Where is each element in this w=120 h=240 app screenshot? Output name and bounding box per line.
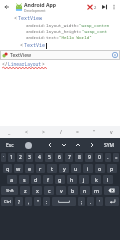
button[interactable]: Back bbox=[2, 2, 12, 12]
staticText: s bbox=[23, 176, 26, 183]
staticText: TextView bbox=[10, 52, 32, 59]
button[interactable]: a bbox=[7, 175, 17, 184]
button[interactable]: 2 bbox=[17, 153, 24, 162]
button[interactable]: Backspace bbox=[104, 186, 119, 195]
staticText: < bbox=[14, 15, 18, 22]
staticText: "wrap_cont bbox=[82, 29, 108, 35]
button[interactable]: o bbox=[95, 164, 105, 173]
button[interactable]: 5 bbox=[45, 153, 53, 162]
button[interactable]: n bbox=[80, 186, 90, 195]
button[interactable]: > bbox=[35, 126, 52, 138]
button[interactable]: 4 bbox=[35, 153, 43, 162]
button[interactable]: - bbox=[105, 153, 111, 162]
button[interactable]: More options bbox=[110, 3, 118, 11]
button[interactable]: = bbox=[113, 153, 119, 162]
button[interactable]: ; bbox=[78, 197, 85, 206]
button[interactable]: Android App bbox=[24, 1, 87, 13]
staticText: , bbox=[28, 199, 30, 205]
button[interactable]: 0 bbox=[95, 153, 103, 162]
button[interactable]: Shft bbox=[1, 186, 18, 195]
button[interactable]: Run bbox=[100, 3, 108, 11]
staticText: l bbox=[107, 176, 109, 183]
staticText: _ bbox=[8, 129, 11, 136]
button[interactable]: r bbox=[36, 164, 45, 173]
button[interactable]: Up bbox=[71, 138, 85, 152]
button[interactable]: m bbox=[92, 186, 102, 195]
staticText: t bbox=[51, 165, 53, 172]
button[interactable]: . bbox=[87, 197, 94, 206]
button[interactable]: w bbox=[14, 164, 23, 173]
staticText: y bbox=[63, 165, 66, 172]
button[interactable]: TextView bbox=[0, 50, 120, 60]
button[interactable]: ' bbox=[96, 197, 103, 206]
button[interactable]: 3 bbox=[26, 153, 33, 162]
button[interactable]: l bbox=[103, 175, 113, 184]
button[interactable]: x bbox=[32, 186, 42, 195]
button[interactable]: 9 bbox=[85, 153, 93, 162]
button[interactable]: i bbox=[83, 164, 93, 173]
staticText: Ctrl bbox=[4, 199, 11, 205]
button[interactable]: Trackpad bbox=[20, 138, 36, 152]
staticText: 5 bbox=[48, 154, 51, 161]
button[interactable]: p bbox=[107, 164, 117, 173]
button[interactable]: , bbox=[25, 197, 32, 206]
button[interactable]: b bbox=[68, 186, 78, 195]
button[interactable]: c bbox=[44, 186, 54, 195]
staticText: > bbox=[42, 61, 45, 67]
button[interactable]: u bbox=[71, 164, 81, 173]
staticText: : bbox=[46, 199, 48, 205]
button[interactable]: s bbox=[19, 175, 29, 184]
staticText: h bbox=[70, 176, 74, 183]
staticText: 3 bbox=[28, 154, 31, 161]
button[interactable]: 1 bbox=[8, 153, 15, 162]
button[interactable]: e bbox=[25, 164, 34, 173]
button[interactable]: t bbox=[47, 164, 57, 173]
button[interactable]: Space bbox=[52, 197, 76, 206]
button[interactable]: Errors bbox=[87, 4, 97, 10]
staticText: 6 bbox=[58, 154, 61, 161]
button[interactable]: z bbox=[20, 186, 30, 195]
button[interactable]: 7 bbox=[65, 153, 73, 162]
staticText: e bbox=[28, 165, 32, 172]
button[interactable]: g bbox=[55, 175, 65, 184]
button[interactable]: y bbox=[59, 164, 69, 173]
staticText: " bbox=[37, 199, 39, 205]
staticText: i bbox=[87, 165, 89, 172]
staticText: 0 bbox=[98, 154, 101, 161]
button[interactable]: < bbox=[18, 126, 35, 138]
staticText: / bbox=[60, 129, 62, 136]
button[interactable]: d bbox=[31, 175, 41, 184]
button[interactable]: ` bbox=[1, 153, 6, 162]
staticText: "Hello World" bbox=[59, 35, 92, 41]
button[interactable]: Enter bbox=[105, 197, 119, 206]
button[interactable]: SYM bbox=[99, 138, 120, 152]
button[interactable]: Ctrl bbox=[1, 197, 13, 206]
button[interactable]: = bbox=[69, 126, 86, 138]
button[interactable]: j bbox=[79, 175, 89, 184]
button[interactable]: 8 bbox=[75, 153, 83, 162]
staticText: m bbox=[94, 187, 100, 194]
button[interactable]: _ bbox=[0, 126, 18, 138]
button[interactable]: 6 bbox=[55, 153, 63, 162]
button[interactable]: h bbox=[67, 175, 77, 184]
button[interactable]: k bbox=[91, 175, 101, 184]
staticText: Esc bbox=[6, 142, 14, 149]
button[interactable]: " bbox=[34, 197, 41, 206]
button[interactable]: ? bbox=[15, 197, 23, 206]
button[interactable]: Down bbox=[57, 138, 71, 152]
button[interactable]: q bbox=[3, 164, 12, 173]
staticText: . bbox=[90, 199, 92, 205]
button[interactable]: " bbox=[86, 126, 103, 138]
button[interactable]: v bbox=[56, 186, 66, 195]
button[interactable]: Left bbox=[43, 138, 57, 152]
button[interactable]: / bbox=[52, 126, 69, 138]
button[interactable]: App icon bbox=[14, 2, 23, 11]
button[interactable]: : bbox=[43, 197, 50, 206]
staticText: b bbox=[71, 187, 75, 194]
staticText: 9 bbox=[88, 154, 91, 161]
button[interactable]: f bbox=[43, 175, 53, 184]
button[interactable]: Right bbox=[85, 138, 99, 152]
button[interactable]: v bbox=[103, 126, 120, 138]
staticText: < bbox=[25, 129, 28, 136]
button[interactable]: Esc bbox=[0, 138, 20, 152]
